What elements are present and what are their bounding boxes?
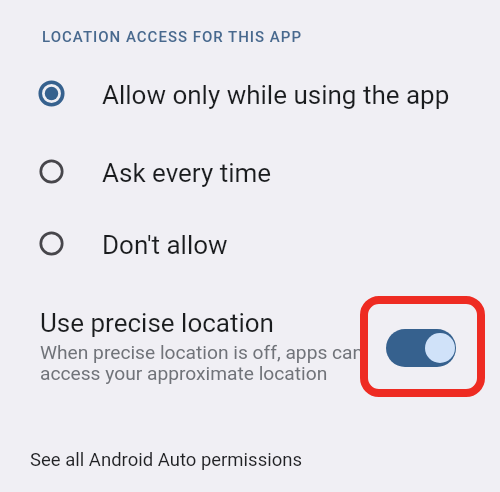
staticText: Allow only while using the app [102, 80, 450, 110]
staticText: When precise location is off, apps can a… [40, 341, 364, 385]
button[interactable]: Use precise location [0, 294, 500, 400]
button[interactable]: Don't allow [0, 210, 500, 276]
button[interactable]: Ask every time [0, 138, 500, 204]
staticText: Use precise location [40, 308, 274, 338]
button[interactable]: See all Android Auto permissions [0, 440, 500, 486]
staticText: Don't allow [102, 230, 228, 260]
button[interactable]: Allow only while using the app [0, 60, 500, 126]
staticText: See all Android Auto permissions [30, 449, 302, 471]
staticText: LOCATION ACCESS FOR THIS APP [42, 28, 302, 46]
button[interactable] [386, 329, 456, 367]
staticText: Ask every time [102, 158, 272, 188]
